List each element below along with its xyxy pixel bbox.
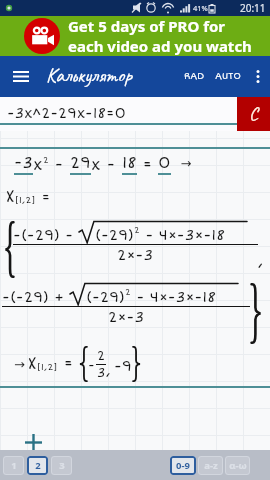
staticText: (-29) [95,226,134,244]
staticText: -(-29) + [2,288,70,306]
staticText: -3 [14,153,33,173]
button[interactable]: a-z [198,456,223,475]
button[interactable]: More options [246,56,270,97]
button[interactable]: Get 5 days of PRO for [0,16,270,56]
staticText: 2 [35,459,41,472]
staticText: , [258,250,264,270]
staticText: 41% [193,3,208,13]
staticText: 3 [59,459,65,472]
staticText: 1 [11,459,17,472]
staticText: 18 [122,153,137,173]
staticText: x [91,155,101,175]
staticText: 2 [43,155,49,166]
staticText: → [14,357,25,372]
staticText: 29 [70,153,91,173]
staticText: = [137,155,158,175]
button[interactable]: 0-9 [170,456,196,475]
button[interactable]: Open navigation menu [0,56,41,97]
staticText: Get 5 days of PRO for [68,16,226,36]
staticText: - 4×-3×-18 [140,226,225,244]
staticText: 0-9 [176,459,190,472]
staticText: [1,2] [37,361,58,373]
staticText: 2 [134,225,140,236]
staticText: RAD [184,71,205,82]
staticText: - [88,357,95,373]
button[interactable]: α-ω [225,456,250,475]
staticText: Калькулятор [46,63,132,88]
staticText: [1,2] [15,194,36,206]
staticText: AUTO [215,71,241,82]
staticText: α-ω [229,459,247,472]
staticText: a-z [204,459,218,472]
staticText: 2×-3 [117,246,154,264]
button[interactable]: 1 [3,456,24,475]
staticText: → [171,156,192,172]
button[interactable]: AUTO [210,61,246,92]
staticText: - 4×-3×-18 [131,288,216,306]
button[interactable]: C [237,97,270,131]
button[interactable]: RAD [179,61,210,92]
staticText: each video ad you watch [68,36,252,56]
button[interactable]: 2 [27,456,48,475]
staticText: 20:11 [240,1,266,15]
staticText: -(-29) - [13,226,79,244]
button[interactable]: 3 [51,456,72,475]
staticText: 0 [158,153,171,173]
staticText: - [49,155,70,175]
staticText: = [36,188,51,206]
staticText: 3 [97,365,106,381]
staticText: (-29) [86,288,125,306]
staticText: 2 [97,348,106,364]
staticText: 2 [125,287,131,298]
staticText: X [28,354,37,374]
staticText: C [249,101,258,125]
staticText: x [33,155,43,175]
staticText: 2×-3 [108,308,145,326]
button[interactable]: Add new calculation [21,430,45,454]
staticText: , [106,362,111,379]
staticText: -9 [114,357,132,375]
staticText: X [6,187,15,207]
staticText: -3x^2-29x-18=0 [7,104,126,122]
staticText: = [58,354,79,374]
staticText: - [101,155,122,175]
